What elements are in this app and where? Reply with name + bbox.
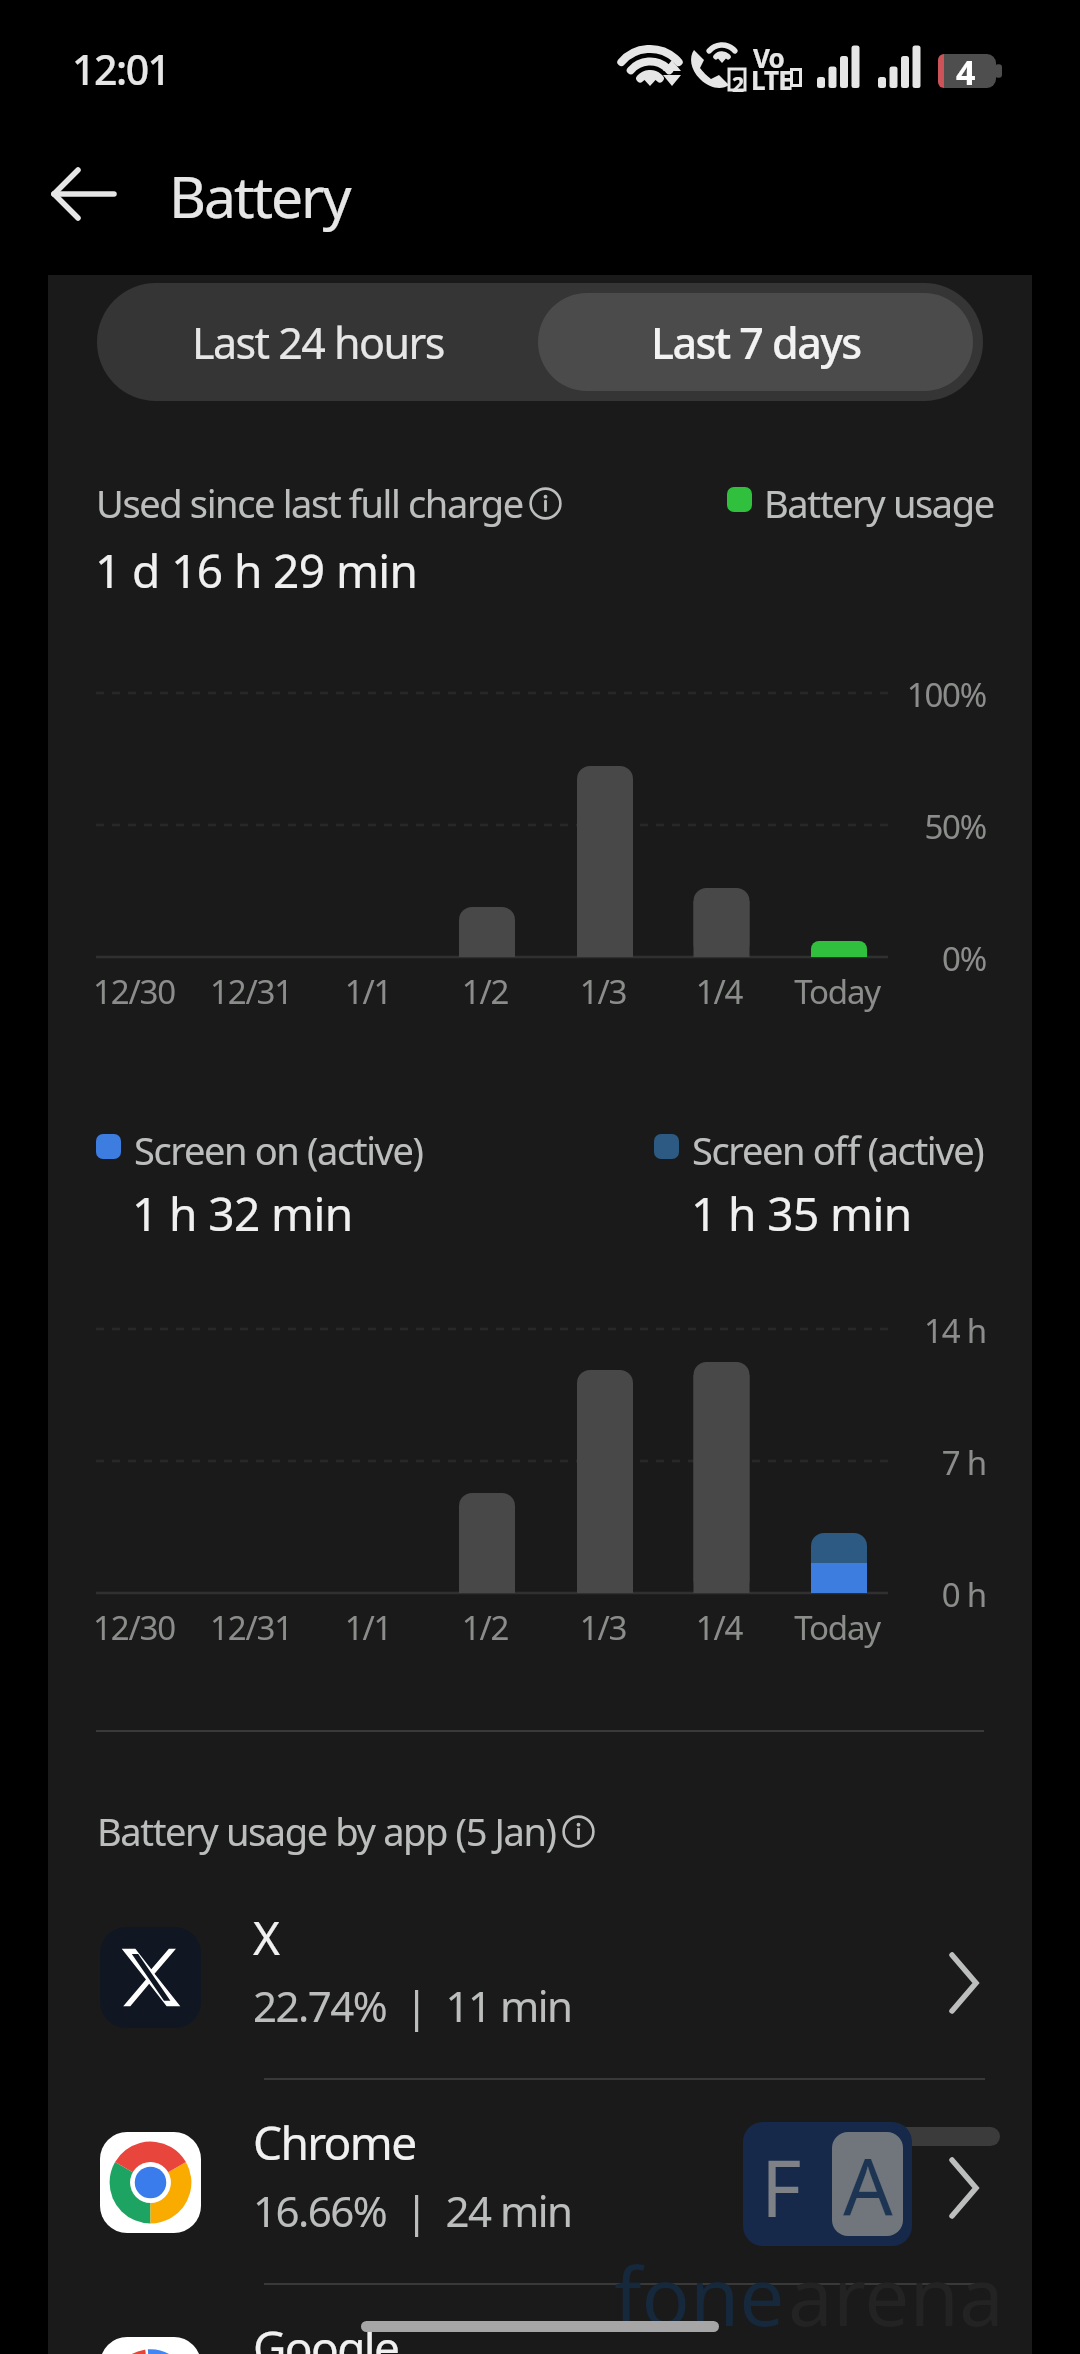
staticText: 1/4 <box>649 969 789 1014</box>
staticText: 2 <box>732 70 744 99</box>
staticText: 22.74% | 11 min <box>253 1977 572 2034</box>
staticText: 12:01 <box>72 41 170 97</box>
staticText: Vo <box>753 40 784 75</box>
staticText: Battery <box>169 157 350 235</box>
button[interactable]: Chrome <box>48 2099 1032 2281</box>
staticText: 1/3 <box>533 969 673 1014</box>
staticText: 4 <box>956 49 975 95</box>
staticText: arena <box>788 2240 1004 2349</box>
staticText: 12/31 <box>181 969 321 1014</box>
staticText: 0% <box>838 936 986 981</box>
staticText: Battery usage <box>764 477 994 529</box>
staticText: Today <box>767 969 907 1014</box>
staticText: 14 h <box>838 1308 986 1353</box>
button[interactable]: Last 24 hours <box>97 283 538 401</box>
staticText: 1/3 <box>533 1605 673 1650</box>
staticText: 1/1 <box>298 969 438 1014</box>
staticText: Last 24 hours <box>192 313 444 372</box>
staticText: 1/1 <box>298 1605 438 1650</box>
staticText: F <box>761 2134 802 2240</box>
button[interactable]: Font size <box>743 2122 912 2246</box>
staticText: 12/30 <box>64 969 204 1014</box>
staticText: Last 7 days <box>651 313 861 372</box>
staticText: 100% <box>838 672 986 717</box>
staticText: 1/2 <box>415 969 555 1014</box>
staticText: Battery usage by app (5 Jan) <box>97 1805 556 1857</box>
button[interactable]: Last 7 days <box>538 293 973 391</box>
staticText: A <box>843 2132 893 2236</box>
staticText: 50% <box>838 804 986 849</box>
staticText: Screen off (active) <box>692 1124 984 1176</box>
staticText: LTE <box>751 62 792 97</box>
staticText: 12/30 <box>64 1605 204 1650</box>
staticText: 1 h 35 min <box>691 1182 912 1245</box>
staticText: 16.66% | 24 min <box>253 2182 572 2239</box>
button[interactable]: Google <box>48 2304 1032 2354</box>
staticText: 1 d 16 h 29 min <box>95 539 418 602</box>
staticText: Chrome <box>253 2111 416 2174</box>
button[interactable]: Back <box>30 140 138 248</box>
staticText: X <box>253 1906 279 1969</box>
staticText: Today <box>767 1605 907 1650</box>
staticText: 7 h <box>838 1440 986 1485</box>
staticText: Used since last full charge <box>96 477 523 529</box>
staticText: Screen on (active) <box>134 1124 423 1176</box>
staticText: fone <box>614 2240 785 2349</box>
button[interactable]: X <box>48 1894 1032 2076</box>
staticText: 0 h <box>838 1572 986 1617</box>
staticText: 12/31 <box>181 1605 321 1650</box>
staticText: 1 h 32 min <box>132 1182 353 1245</box>
staticText: 1/4 <box>649 1605 789 1650</box>
staticText: Google <box>253 2316 399 2354</box>
staticText: 1/2 <box>415 1605 555 1650</box>
